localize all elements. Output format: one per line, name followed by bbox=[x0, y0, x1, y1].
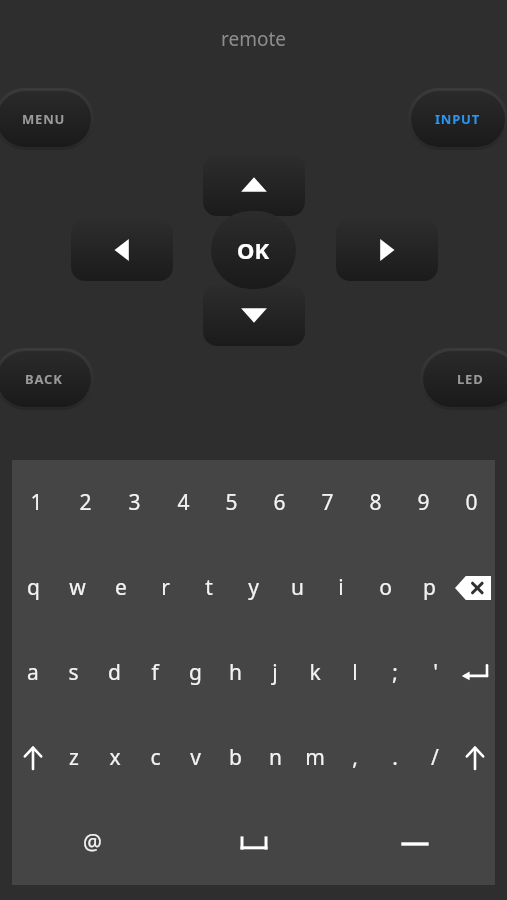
button[interactable]: 9 bbox=[399, 460, 447, 545]
staticText: . bbox=[392, 743, 398, 772]
button[interactable]: 1 bbox=[12, 460, 61, 545]
staticText: INPUT bbox=[435, 110, 481, 128]
staticText: 6 bbox=[273, 488, 286, 517]
staticText: f bbox=[151, 658, 159, 687]
staticText: k bbox=[309, 658, 321, 687]
button[interactable]: OK bbox=[211, 211, 296, 289]
button[interactable]: v bbox=[175, 715, 215, 800]
button[interactable]: 6 bbox=[255, 460, 303, 545]
button[interactable]: m bbox=[295, 715, 335, 800]
button[interactable]: q bbox=[12, 545, 55, 630]
button[interactable]: u bbox=[275, 545, 319, 630]
staticText: 0 bbox=[465, 488, 478, 517]
staticText: 9 bbox=[417, 488, 430, 517]
button[interactable]: Backspace bbox=[451, 545, 495, 630]
button[interactable]: y bbox=[231, 545, 275, 630]
staticText: remote bbox=[221, 26, 287, 52]
button[interactable]: Underscore bbox=[334, 800, 495, 885]
staticText: 7 bbox=[321, 488, 334, 517]
staticText: 4 bbox=[177, 488, 190, 517]
staticText: x bbox=[109, 743, 121, 772]
button[interactable]: 3 bbox=[110, 460, 159, 545]
staticText: w bbox=[69, 573, 86, 602]
button[interactable]: t bbox=[187, 545, 231, 630]
button[interactable]: Left bbox=[71, 219, 173, 281]
staticText: , bbox=[352, 743, 358, 772]
button[interactable]: 7 bbox=[303, 460, 351, 545]
button[interactable]: Enter bbox=[455, 630, 495, 715]
button[interactable]: MENU bbox=[0, 91, 91, 147]
button[interactable]: z bbox=[53, 715, 94, 800]
button[interactable]: 0 bbox=[447, 460, 495, 545]
staticText: @ bbox=[83, 828, 102, 857]
staticText: q bbox=[27, 573, 40, 602]
button[interactable]: 8 bbox=[351, 460, 399, 545]
button[interactable]: INPUT bbox=[411, 91, 505, 147]
staticText: l bbox=[352, 658, 358, 687]
button[interactable]: g bbox=[175, 630, 215, 715]
staticText: 3 bbox=[128, 488, 141, 517]
button[interactable]: 2 bbox=[61, 460, 110, 545]
staticText: y bbox=[248, 573, 259, 602]
staticText: ; bbox=[392, 658, 398, 687]
staticText: s bbox=[68, 658, 79, 687]
button[interactable]: LED bbox=[423, 351, 507, 407]
staticText: OK bbox=[237, 235, 270, 265]
button[interactable]: 4 bbox=[159, 460, 207, 545]
button[interactable]: x bbox=[94, 715, 135, 800]
staticText: g bbox=[189, 658, 202, 687]
staticText: 8 bbox=[369, 488, 382, 517]
button[interactable]: Space bbox=[173, 800, 334, 885]
staticText: d bbox=[108, 658, 121, 687]
button[interactable]: l bbox=[335, 630, 375, 715]
button[interactable]: , bbox=[335, 715, 375, 800]
staticText: j bbox=[272, 658, 278, 687]
staticText: / bbox=[431, 743, 439, 772]
button[interactable]: w bbox=[55, 545, 99, 630]
button[interactable]: c bbox=[135, 715, 175, 800]
staticText: h bbox=[229, 658, 242, 687]
staticText: BACK bbox=[25, 370, 63, 388]
button[interactable]: a bbox=[12, 630, 53, 715]
staticText: b bbox=[229, 743, 242, 772]
button[interactable]: Down bbox=[203, 284, 305, 346]
staticText: ' bbox=[433, 658, 438, 687]
button[interactable]: f bbox=[135, 630, 175, 715]
button[interactable]: / bbox=[415, 715, 455, 800]
button[interactable]: Up bbox=[203, 154, 305, 216]
button[interactable]: p bbox=[407, 545, 451, 630]
button[interactable]: e bbox=[99, 545, 143, 630]
staticText: 1 bbox=[30, 488, 43, 517]
staticText: MENU bbox=[22, 110, 66, 128]
staticText: t bbox=[205, 573, 213, 602]
button[interactable]: BACK bbox=[0, 351, 91, 407]
button[interactable]: . bbox=[375, 715, 415, 800]
button[interactable]: r bbox=[143, 545, 187, 630]
button[interactable]: ' bbox=[415, 630, 455, 715]
button[interactable]: @ bbox=[12, 800, 173, 885]
button[interactable]: s bbox=[53, 630, 94, 715]
button[interactable]: k bbox=[295, 630, 335, 715]
button[interactable]: d bbox=[94, 630, 135, 715]
staticText: e bbox=[115, 573, 127, 602]
staticText: p bbox=[423, 573, 436, 602]
button[interactable]: i bbox=[319, 545, 363, 630]
button[interactable]: n bbox=[255, 715, 295, 800]
button[interactable]: j bbox=[255, 630, 295, 715]
button[interactable]: Shift bbox=[12, 715, 53, 800]
button[interactable]: b bbox=[215, 715, 255, 800]
staticText: z bbox=[69, 743, 79, 772]
button[interactable]: ; bbox=[375, 630, 415, 715]
staticText: m bbox=[305, 743, 325, 772]
staticText: o bbox=[379, 573, 392, 602]
button[interactable]: 5 bbox=[207, 460, 255, 545]
staticText: u bbox=[291, 573, 304, 602]
button[interactable]: Shift bbox=[455, 715, 495, 800]
staticText: i bbox=[338, 573, 344, 602]
staticText: 2 bbox=[79, 488, 92, 517]
button[interactable]: h bbox=[215, 630, 255, 715]
button[interactable]: Right bbox=[336, 219, 438, 281]
staticText: r bbox=[161, 573, 170, 602]
button[interactable]: o bbox=[363, 545, 407, 630]
staticText: n bbox=[269, 743, 282, 772]
